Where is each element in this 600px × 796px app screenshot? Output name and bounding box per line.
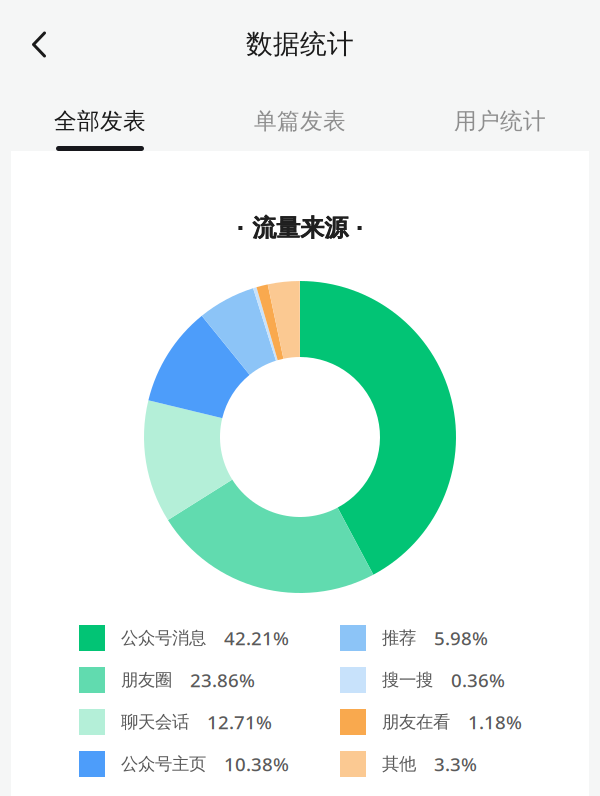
staticText: 其他 — [382, 753, 416, 775]
staticText: 朋友圈 — [121, 669, 172, 691]
button[interactable]: 单篇发表 — [200, 88, 400, 151]
staticText: 23.86% — [190, 668, 255, 692]
staticText: 聊天会话 — [121, 711, 189, 733]
staticText: 公众号主页 — [121, 753, 206, 775]
staticText: 数据统计 — [246, 28, 354, 60]
staticText: 0.36% — [451, 668, 505, 692]
staticText: 全部发表 — [54, 107, 146, 135]
staticText: 用户统计 — [454, 107, 546, 135]
staticText: 12.71% — [207, 710, 272, 734]
staticText: 42.21% — [224, 626, 289, 650]
staticText: 朋友在看 — [382, 711, 450, 733]
button[interactable]: Back — [0, 0, 74, 88]
staticText: 流量来源 — [252, 213, 348, 243]
staticText: 公众号消息 — [121, 627, 206, 649]
staticText: 3.3% — [434, 752, 477, 776]
staticText: 单篇发表 — [254, 107, 346, 135]
staticText: 流量来源 — [253, 213, 349, 243]
button[interactable]: 用户统计 — [400, 88, 600, 151]
button[interactable]: 全部发表 — [0, 88, 200, 151]
staticText: 5.98% — [434, 626, 488, 650]
staticText: 搜一搜 — [382, 669, 433, 691]
staticText: 1.18% — [468, 710, 522, 734]
staticText: 推荐 — [382, 627, 416, 649]
staticText: 10.38% — [224, 752, 289, 776]
